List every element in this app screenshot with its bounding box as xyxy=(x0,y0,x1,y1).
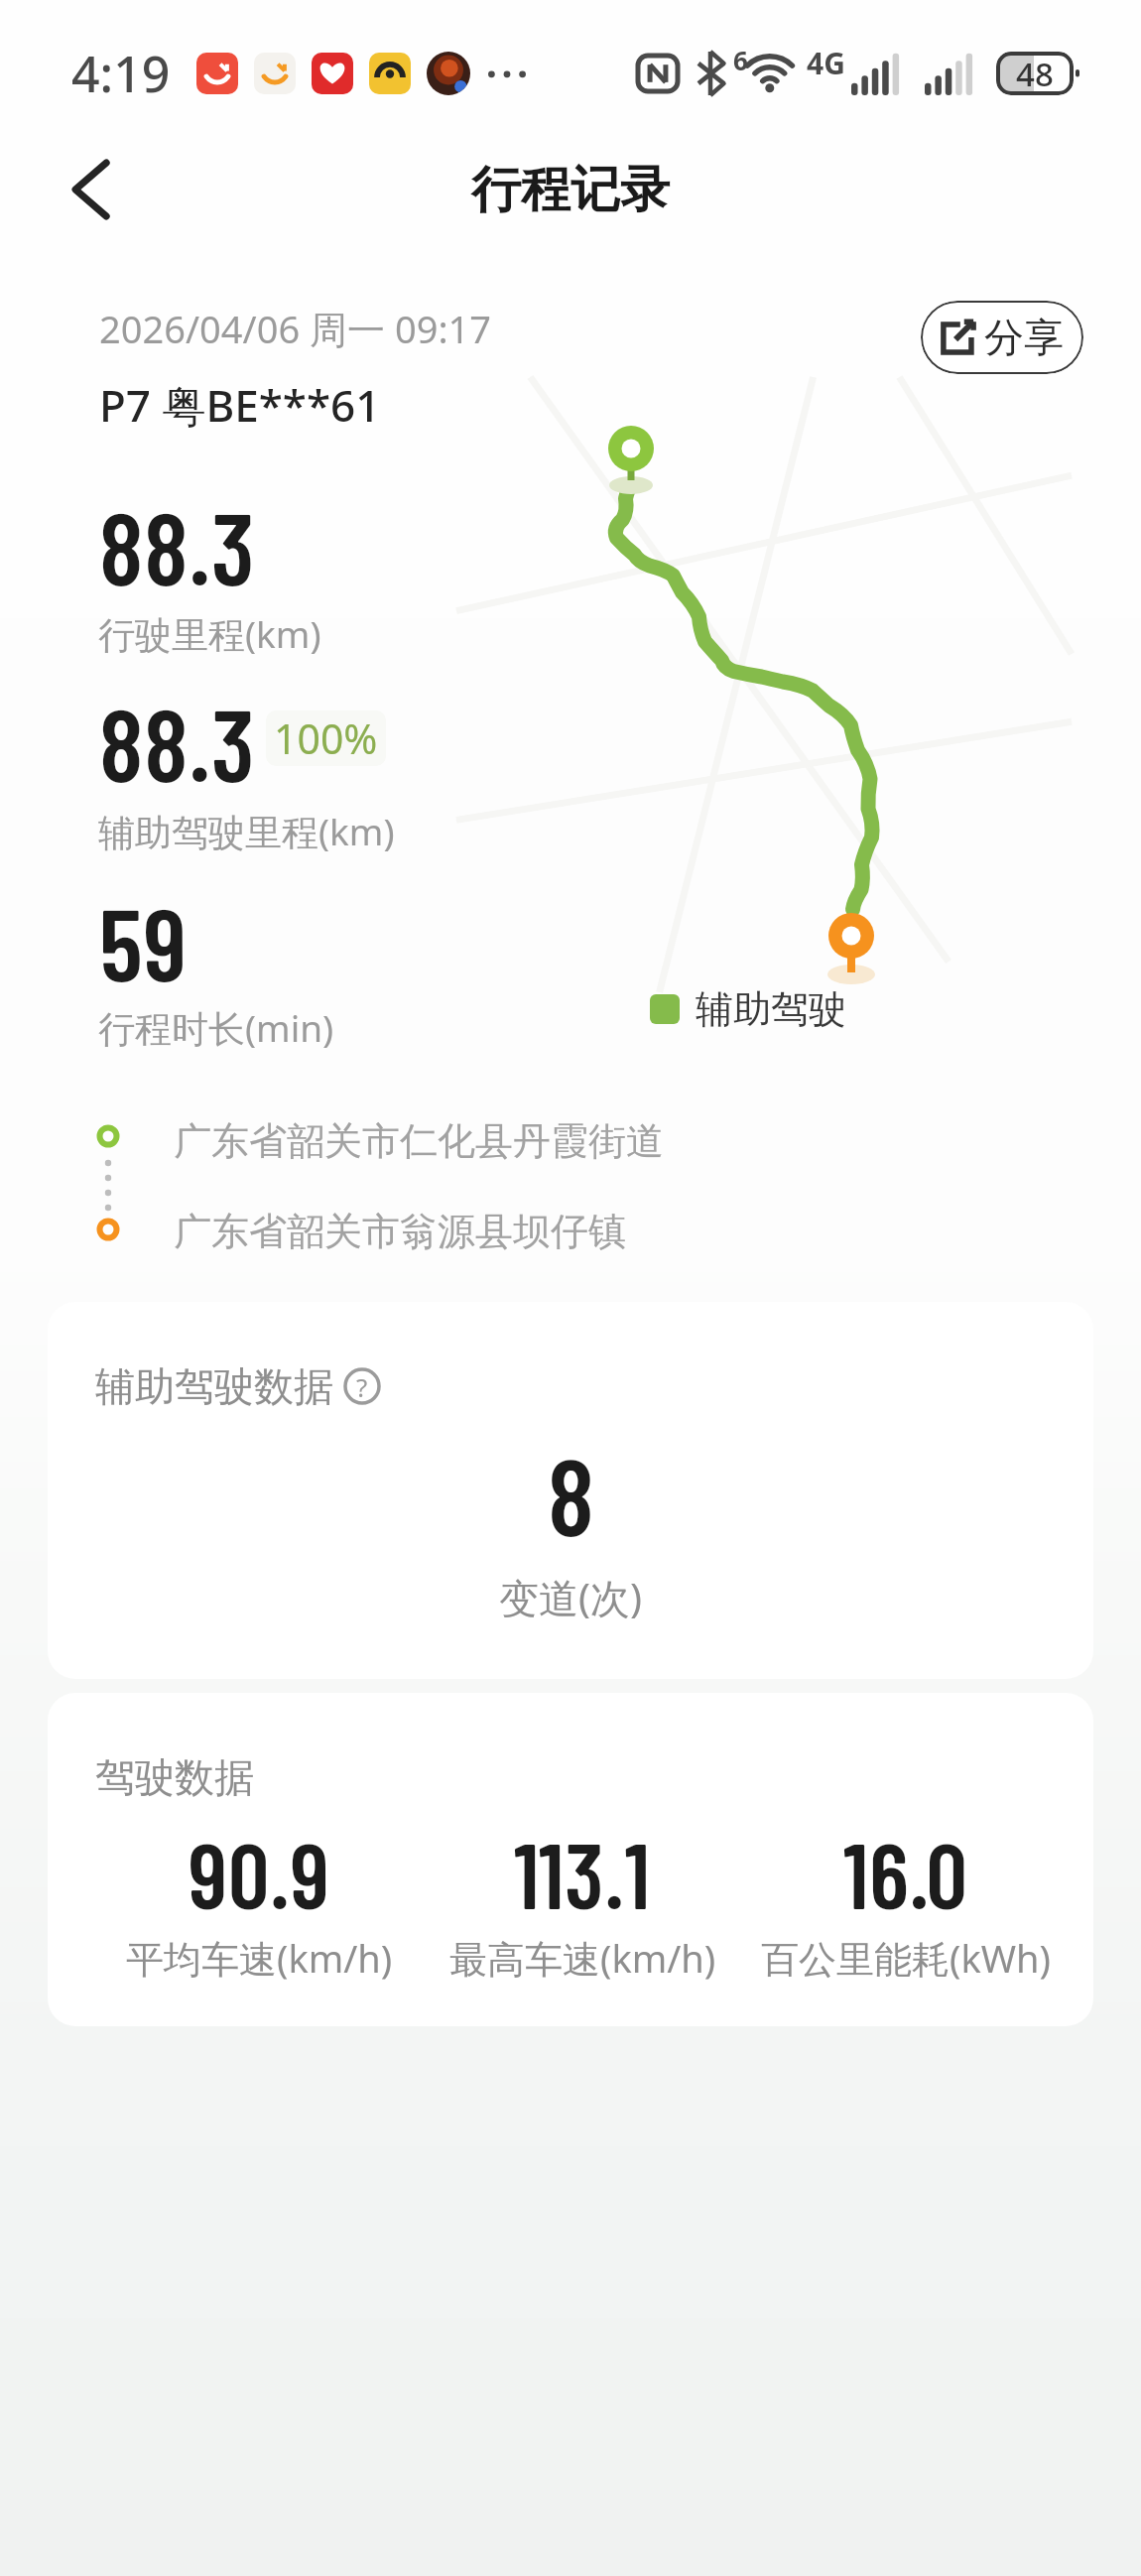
staticText: 驾驶数据 xyxy=(95,1752,254,1802)
button[interactable] xyxy=(71,161,111,218)
staticText: 辅助驾驶里程(km) xyxy=(98,806,395,856)
staticText: 59 xyxy=(99,880,188,1001)
staticText: 88.3 xyxy=(99,681,256,802)
staticText: 辅助驾驶数据 xyxy=(95,1361,333,1411)
staticText: 100% xyxy=(274,710,378,766)
staticText: 4G xyxy=(807,43,845,83)
staticText: 广东省韶关市仁化县丹霞街道 xyxy=(174,1117,664,1165)
staticText: 变道(次) xyxy=(499,1570,642,1624)
staticText: 8 xyxy=(548,1429,594,1558)
button[interactable]: 辅助驾驶数据 xyxy=(48,1302,1093,1679)
staticText: 行驶里程(km) xyxy=(98,608,321,659)
staticText: 88.3 xyxy=(99,484,256,605)
staticText: 2026/04/06 周一 09:17 xyxy=(99,303,492,354)
staticText: 48 xyxy=(1016,52,1054,95)
staticText: 行程记录 xyxy=(471,159,670,221)
staticText: 分享 xyxy=(984,313,1064,362)
staticText: 广东省韶关市翁源县坝仔镇 xyxy=(174,1208,626,1255)
staticText: 平均车速(km/h) xyxy=(126,1932,393,1984)
button[interactable]: 分享 xyxy=(921,301,1083,374)
button[interactable]: 驾驶数据 xyxy=(48,1693,1093,2026)
staticText: 6 xyxy=(733,43,748,77)
staticText: P7 粤BE***61 xyxy=(99,375,381,435)
staticText: 90.9 xyxy=(189,1818,330,1927)
staticText: ? xyxy=(356,1369,368,1404)
staticText: 行程时长(min) xyxy=(98,1002,334,1053)
staticText: 16.0 xyxy=(843,1818,968,1927)
staticText: 113.1 xyxy=(514,1818,652,1927)
staticText: 百公里能耗(kWh) xyxy=(761,1932,1051,1984)
staticText: 4:19 xyxy=(71,40,171,107)
staticText: 辅助驾驶 xyxy=(696,985,846,1033)
staticText: 最高车速(km/h) xyxy=(449,1932,716,1984)
